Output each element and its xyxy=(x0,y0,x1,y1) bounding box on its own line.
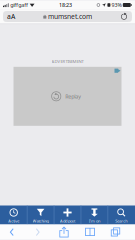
staticText: Replay xyxy=(65,93,81,100)
staticText: aA xyxy=(7,12,15,21)
staticText: Add post xyxy=(60,218,75,223)
button[interactable]: I'm on xyxy=(81,205,107,224)
staticText: giffgaff xyxy=(10,1,28,9)
button[interactable]: Forward xyxy=(24,225,51,239)
staticText: mumsnet.com xyxy=(48,12,92,21)
button[interactable]: Reload xyxy=(108,11,132,22)
staticText: 18:23 xyxy=(59,1,72,9)
button[interactable]: Watching xyxy=(27,205,54,224)
button[interactable]: Back xyxy=(0,225,24,239)
staticText: Watching xyxy=(33,218,49,223)
staticText: Search xyxy=(115,218,127,223)
button[interactable]: Search xyxy=(108,205,134,224)
button[interactable]: Share xyxy=(51,225,77,239)
button[interactable]: Page settings xyxy=(3,11,27,22)
staticText: ADVERTISEMENT xyxy=(51,58,83,64)
staticText: 93% xyxy=(112,1,122,9)
staticText: I'm on xyxy=(89,218,100,223)
staticText: Active xyxy=(8,218,19,223)
button[interactable]: Bookmarks xyxy=(77,225,103,239)
button[interactable]: Tabs xyxy=(103,225,128,239)
button[interactable]: Active xyxy=(1,205,27,224)
button[interactable]: Add post xyxy=(54,205,81,224)
